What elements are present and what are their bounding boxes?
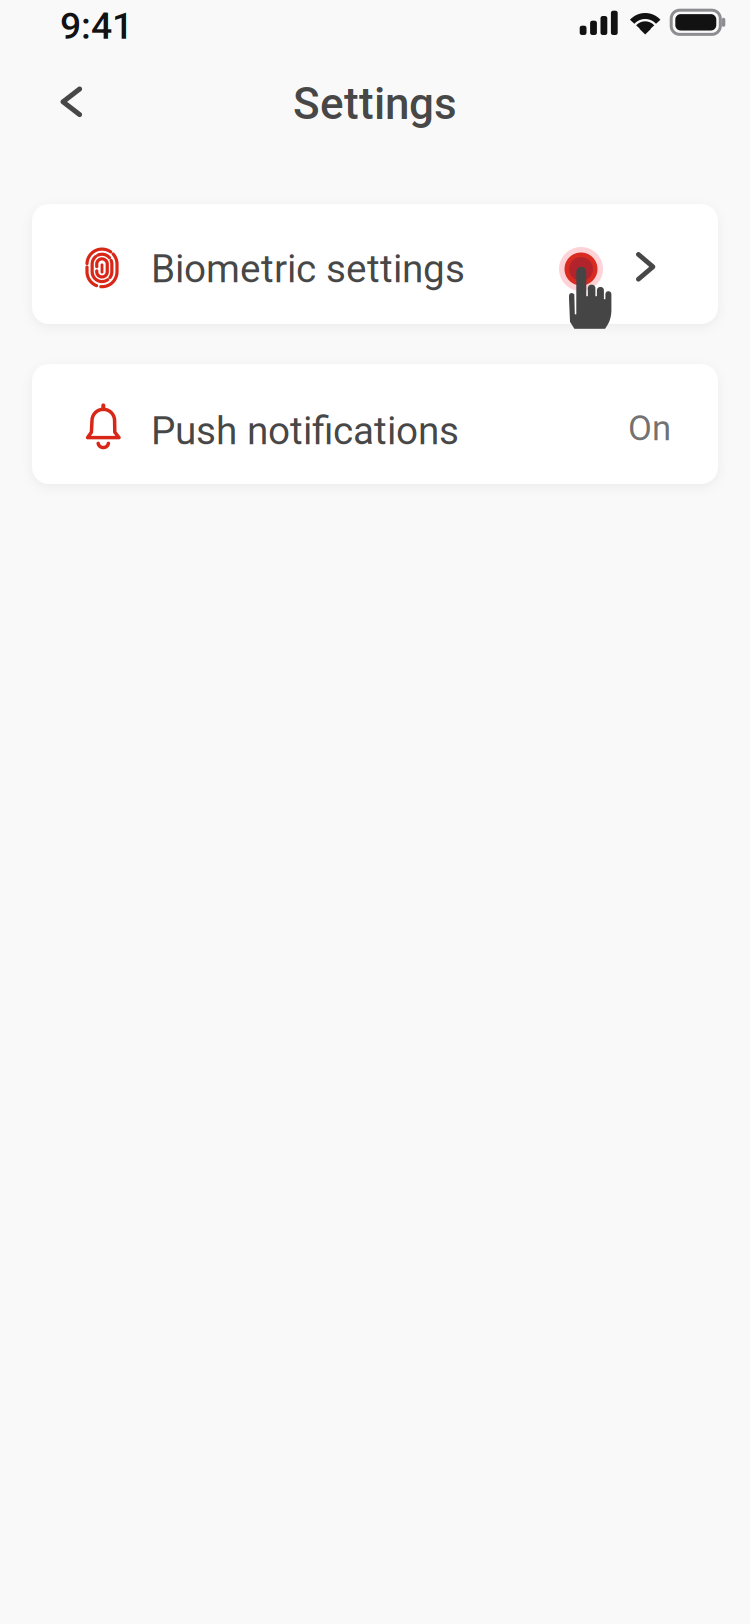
button[interactable]: Back bbox=[40, 71, 102, 133]
button[interactable]: Biometric settings bbox=[0, 204, 750, 324]
staticText: Settings bbox=[293, 78, 457, 130]
button[interactable]: Push notifications bbox=[0, 364, 750, 484]
staticText: Biometric settings bbox=[151, 246, 465, 292]
staticText: On bbox=[628, 408, 671, 449]
staticText: Push notifications bbox=[151, 408, 459, 454]
staticText: 9:41 bbox=[60, 4, 133, 48]
